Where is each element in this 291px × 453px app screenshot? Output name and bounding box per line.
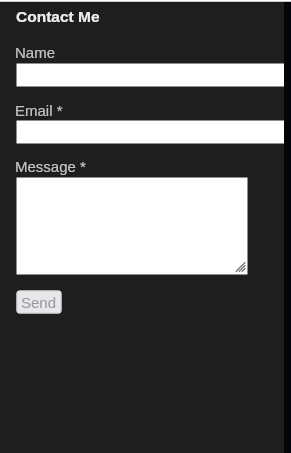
button[interactable]: Email text field: [16, 121, 284, 144]
staticText: Message *: [15, 158, 86, 175]
staticText: Contact Me: [16, 8, 100, 25]
staticText: Send: [21, 294, 57, 311]
button[interactable]: Send: [16, 290, 62, 314]
button[interactable]: Name text field: [16, 64, 284, 87]
staticText: Name: [15, 44, 56, 61]
staticText: Email *: [15, 102, 63, 119]
button[interactable]: Message text area: [16, 178, 247, 275]
